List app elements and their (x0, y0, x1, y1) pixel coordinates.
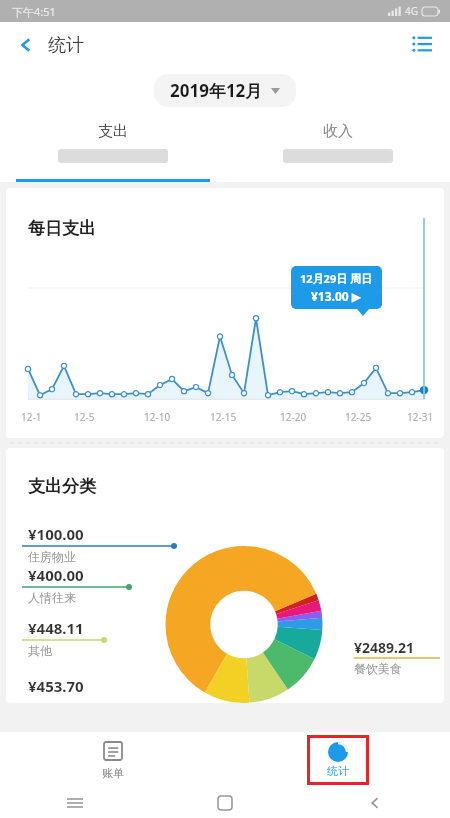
staticText: 收入 (323, 122, 353, 141)
staticText: 12-5 (74, 410, 95, 424)
staticText: ¥2489.21 (354, 638, 414, 657)
staticText: 4G (405, 4, 418, 18)
staticText: 12-31 (407, 410, 434, 424)
staticText: 支出分类 (28, 476, 96, 497)
staticText: 12-10 (144, 410, 171, 424)
button[interactable]: 2019年12月 (154, 74, 296, 107)
button[interactable]: Back (4, 23, 48, 67)
staticText: 统计 (327, 764, 349, 778)
staticText: 每日支出 (28, 218, 96, 239)
staticText: 住房物业 (28, 549, 76, 564)
staticText: 餐饮美食 (354, 661, 402, 676)
staticText: 12月29日 周日 (300, 271, 373, 286)
staticText: 12-20 (280, 410, 307, 424)
button[interactable]: 支出 (0, 112, 225, 182)
staticText: ¥100.00 (28, 524, 84, 544)
other: Recents (67, 795, 83, 811)
staticText: 账单 (102, 766, 124, 780)
staticText: 下午4:51 (12, 4, 56, 19)
button[interactable]: 统计 (310, 738, 366, 782)
other: Home (218, 796, 232, 810)
staticText: 统计 (48, 34, 84, 57)
staticText: ¥453.70 (28, 676, 84, 696)
staticText: ¥448.11 (28, 618, 84, 638)
button[interactable]: List menu (400, 23, 444, 67)
staticText: ¥400.00 (28, 565, 84, 585)
staticText: 其他 (28, 643, 52, 658)
staticText: 人情往来 (28, 590, 76, 605)
staticText: 2019年12月 (170, 79, 263, 102)
other: Back (368, 796, 382, 810)
staticText: ¥13.00 ▶ (311, 288, 362, 304)
staticText: 12-25 (345, 410, 372, 424)
button[interactable]: 收入 (225, 112, 450, 182)
staticText: 12-1 (21, 410, 42, 424)
staticText: 支出 (98, 122, 128, 141)
staticText: 12-15 (210, 410, 237, 424)
button[interactable]: 账单 (96, 735, 130, 786)
